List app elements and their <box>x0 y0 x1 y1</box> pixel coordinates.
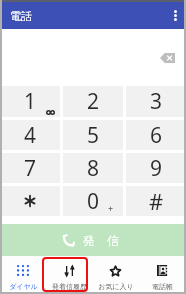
staticText: 発着信履歴 <box>52 282 87 291</box>
button[interactable]: 7 <box>0 153 60 183</box>
staticText: 電話帳 <box>152 282 173 291</box>
staticText: + <box>108 202 114 214</box>
button[interactable]: 1 <box>0 86 60 117</box>
button[interactable]: 発着信履歴 <box>46 256 92 294</box>
staticText: # <box>149 186 164 216</box>
button[interactable]: 3 <box>126 86 186 117</box>
button[interactable]: 4 <box>0 120 60 150</box>
staticText: 3 <box>150 87 163 116</box>
staticText: お気に入り <box>98 282 134 291</box>
staticText: 6 <box>150 121 163 150</box>
staticText: 4 <box>24 121 37 150</box>
button[interactable]: ダイヤル <box>0 256 46 294</box>
button[interactable]: 0 <box>63 186 123 216</box>
button[interactable]: 2 <box>63 86 123 117</box>
button[interactable]: # <box>126 186 186 216</box>
staticText: 0 <box>87 187 100 216</box>
staticText: 7 <box>24 154 37 183</box>
button[interactable]: 6 <box>126 120 186 150</box>
button[interactable]: 発 信 <box>0 224 186 256</box>
staticText: 9 <box>150 154 163 183</box>
button[interactable]: More options <box>164 2 186 29</box>
button[interactable]: お気に入り <box>92 256 139 294</box>
staticText: 1 <box>24 87 37 116</box>
staticText: 2 <box>87 87 100 116</box>
button[interactable] <box>0 186 60 216</box>
staticText: ダイヤル <box>9 282 38 291</box>
button[interactable]: 8 <box>63 153 123 183</box>
button[interactable]: 電話帳 <box>139 256 186 294</box>
button[interactable]: Backspace <box>160 53 175 63</box>
staticText: 5 <box>87 121 100 150</box>
button[interactable]: 9 <box>126 153 186 183</box>
staticText: 8 <box>87 154 100 183</box>
staticText: 発 信 <box>83 232 119 248</box>
button[interactable]: 5 <box>63 120 123 150</box>
staticText: 電話 <box>10 9 32 23</box>
